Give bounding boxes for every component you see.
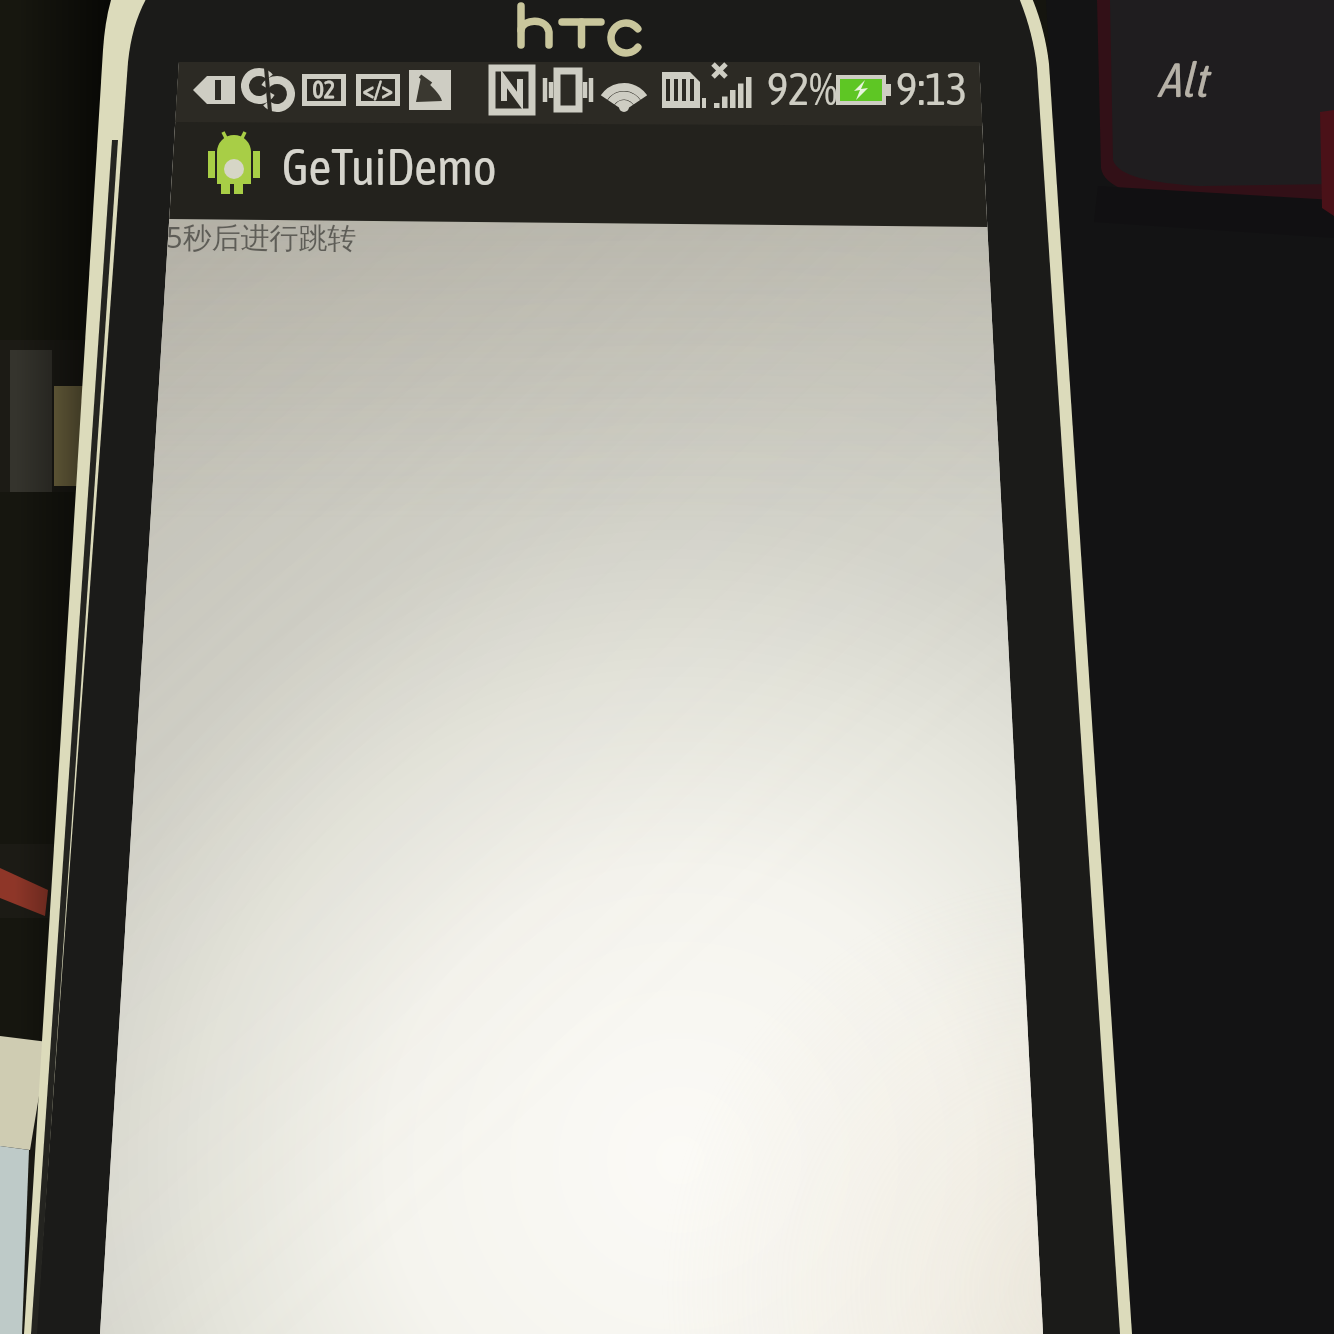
button[interactable]: GeTuiDemo app screen (0, 0, 1334, 1334)
